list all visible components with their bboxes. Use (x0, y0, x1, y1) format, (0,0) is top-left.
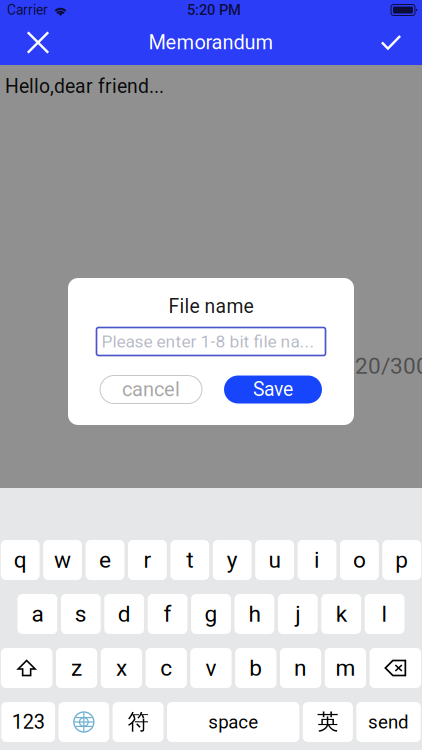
staticText: space (208, 711, 258, 733)
button[interactable]: 123 (1, 702, 55, 742)
staticText: u (269, 547, 281, 573)
button[interactable]: p (382, 540, 421, 580)
staticText: Save (253, 378, 293, 401)
staticText: o (353, 547, 366, 573)
staticText: k (336, 601, 347, 627)
button[interactable]: Delete (370, 648, 421, 688)
button[interactable]: q (1, 540, 40, 580)
button[interactable]: n (280, 648, 321, 688)
button[interactable]: f (148, 594, 187, 634)
button[interactable]: cancel (100, 375, 202, 403)
staticText: 123 (12, 710, 45, 734)
button[interactable]: v (190, 648, 232, 688)
staticText: Hello,dear friend... (5, 75, 164, 98)
button[interactable]: c (146, 648, 187, 688)
staticText: 符 (128, 709, 149, 735)
staticText: 英 (317, 709, 338, 735)
button[interactable]: w (43, 540, 82, 580)
button[interactable]: t (170, 540, 209, 580)
button[interactable]: u (255, 540, 294, 580)
staticText: t (186, 547, 193, 573)
staticText: cancel (122, 378, 180, 401)
staticText: Memorandum (148, 31, 273, 54)
staticText: j (295, 601, 300, 627)
button[interactable]: l (365, 594, 404, 634)
staticText: a (31, 601, 43, 627)
button[interactable]: k (321, 594, 361, 634)
staticText: g (204, 601, 217, 627)
button[interactable]: h (234, 594, 274, 634)
staticText: s (75, 601, 87, 627)
button[interactable]: 符 (113, 702, 164, 742)
button[interactable]: space (167, 702, 299, 742)
staticText: z (71, 655, 82, 681)
staticText: p (395, 547, 408, 573)
button[interactable]: s (61, 594, 101, 634)
button[interactable]: Done (363, 20, 419, 65)
staticText: f (164, 601, 172, 627)
staticText: 5:20 PM (187, 1, 241, 19)
staticText: h (248, 601, 260, 627)
staticText: n (294, 655, 307, 681)
button[interactable]: Shift (1, 648, 52, 688)
staticText: c (160, 655, 172, 681)
button[interactable]: x (101, 648, 142, 688)
staticText: w (54, 547, 71, 573)
staticText: i (314, 547, 320, 573)
button[interactable]: g (191, 594, 231, 634)
button[interactable]: z (56, 648, 97, 688)
button[interactable]: e (86, 540, 124, 580)
button[interactable]: Next keyboard (58, 702, 109, 742)
button[interactable]: d (104, 594, 144, 634)
staticText: m (335, 655, 355, 681)
button[interactable]: send (356, 702, 421, 742)
staticText: x (116, 655, 127, 681)
button[interactable]: y (213, 540, 252, 580)
button[interactable]: Close (10, 20, 66, 65)
staticText: y (227, 547, 238, 573)
staticText: d (118, 601, 131, 627)
button[interactable]: i (298, 540, 336, 580)
button[interactable]: a (17, 594, 57, 634)
button[interactable]: m (325, 648, 366, 688)
staticText: 20/3000 (355, 353, 422, 379)
staticText: File name (168, 295, 253, 318)
staticText: e (99, 547, 111, 573)
staticText: l (382, 601, 388, 627)
staticText: Please enter 1-8 bit file na... (101, 331, 314, 352)
staticText: q (14, 547, 27, 573)
button[interactable]: j (278, 594, 318, 634)
staticText: Carrier (7, 2, 48, 18)
button[interactable]: 英 (303, 702, 353, 742)
staticText: b (249, 655, 262, 681)
button[interactable]: o (340, 540, 379, 580)
button[interactable]: r (128, 540, 167, 580)
button[interactable]: b (235, 648, 276, 688)
button[interactable]: Save (224, 375, 322, 403)
staticText: send (368, 711, 409, 733)
staticText: v (205, 655, 216, 681)
staticText: r (143, 547, 151, 573)
